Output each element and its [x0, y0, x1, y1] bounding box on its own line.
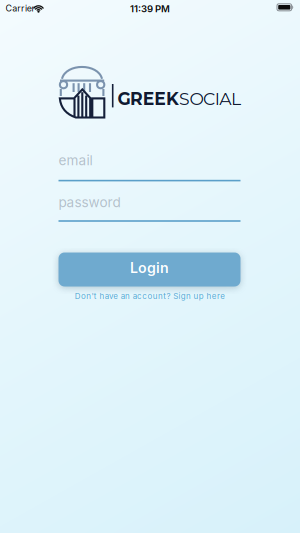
staticText: Carrier: [5, 3, 35, 14]
staticText: email: [58, 152, 92, 169]
staticText: email: [58, 152, 92, 169]
textField[interactable]: email: [58, 152, 240, 169]
staticText: password: [58, 194, 120, 211]
staticText: password: [58, 194, 120, 211]
staticText: GREEK: [117, 88, 179, 109]
secureTextField[interactable]: password: [58, 194, 240, 211]
staticText: 11:39 PM: [130, 3, 170, 14]
staticText: SOCIAL: [179, 88, 241, 109]
button[interactable]: Don't have an account? Sign up here: [75, 291, 225, 301]
button[interactable]: Login: [58, 252, 240, 286]
staticText: Login: [130, 259, 169, 276]
staticText: Don't have an account? Sign up here: [75, 291, 225, 301]
